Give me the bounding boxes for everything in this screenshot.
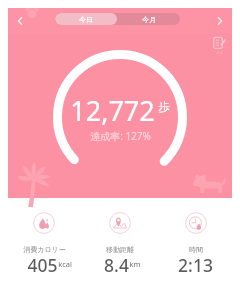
staticText: 消費カロリー xyxy=(23,245,66,254)
staticText: 8.4 xyxy=(104,253,129,277)
staticText: 今月 xyxy=(142,15,156,24)
staticText: メモ xyxy=(215,50,224,55)
staticText: km xyxy=(129,259,141,269)
button[interactable]: Memo xyxy=(212,36,226,55)
staticText: 今日 xyxy=(79,15,93,24)
button[interactable]: 今日 xyxy=(55,13,117,25)
staticText: 2:13 xyxy=(178,253,213,277)
button[interactable]: 移動距離 xyxy=(82,212,158,278)
staticText: 達成率: 127% xyxy=(90,129,151,143)
button[interactable]: Next xyxy=(208,8,232,34)
staticText: 12,772 xyxy=(70,92,155,129)
staticText: 移動距離 xyxy=(106,245,134,254)
staticText: 405 xyxy=(27,253,58,277)
staticText: kcal xyxy=(58,259,72,269)
button[interactable]: 今月 xyxy=(117,13,180,25)
button[interactable]: Previous xyxy=(8,8,32,34)
button[interactable]: 時間 xyxy=(158,212,234,278)
staticText: 時間 xyxy=(189,245,203,254)
button[interactable]: 消費カロリー xyxy=(6,212,82,278)
staticText: 歩 xyxy=(158,99,170,114)
